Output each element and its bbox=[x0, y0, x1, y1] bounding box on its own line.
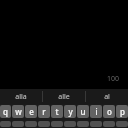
staticText: 100 bbox=[107, 74, 120, 84]
button[interactable]: key g bbox=[51, 121, 63, 127]
staticText: o bbox=[107, 106, 112, 117]
button[interactable]: w bbox=[12, 105, 24, 118]
button[interactable]: e bbox=[25, 105, 37, 118]
staticText: e bbox=[29, 106, 34, 117]
staticText: t bbox=[55, 106, 59, 117]
staticText: y bbox=[68, 106, 73, 117]
button[interactable]: key h bbox=[64, 121, 76, 127]
button[interactable]: key d bbox=[25, 121, 37, 127]
button[interactable]: key m bbox=[116, 121, 128, 127]
staticText: i bbox=[95, 106, 98, 117]
button[interactable]: key f bbox=[38, 121, 50, 127]
button[interactable]: y bbox=[64, 105, 76, 118]
staticText: w bbox=[15, 106, 22, 117]
button[interactable]: u bbox=[77, 105, 89, 118]
button[interactable]: q bbox=[0, 105, 11, 118]
button[interactable]: key s bbox=[12, 121, 24, 127]
staticText: q bbox=[3, 106, 8, 117]
button[interactable]: t bbox=[51, 105, 63, 118]
staticText: alla bbox=[15, 92, 27, 102]
button[interactable]: p bbox=[116, 105, 128, 118]
staticText: alle bbox=[58, 92, 70, 102]
staticText: r bbox=[42, 106, 46, 117]
button[interactable]: i bbox=[90, 105, 102, 118]
button[interactable]: alla bbox=[0, 89, 42, 104]
button[interactable]: key j bbox=[77, 121, 89, 127]
staticText: u bbox=[80, 106, 86, 117]
button[interactable]: al bbox=[86, 89, 128, 104]
staticText: al bbox=[104, 92, 110, 102]
button[interactable]: o bbox=[103, 105, 115, 118]
button[interactable]: key k bbox=[90, 121, 102, 127]
button[interactable]: key l bbox=[103, 121, 115, 127]
button[interactable]: key a bbox=[0, 121, 11, 127]
button[interactable]: alle bbox=[43, 89, 85, 104]
button[interactable]: r bbox=[38, 105, 50, 118]
staticText: p bbox=[120, 106, 125, 117]
